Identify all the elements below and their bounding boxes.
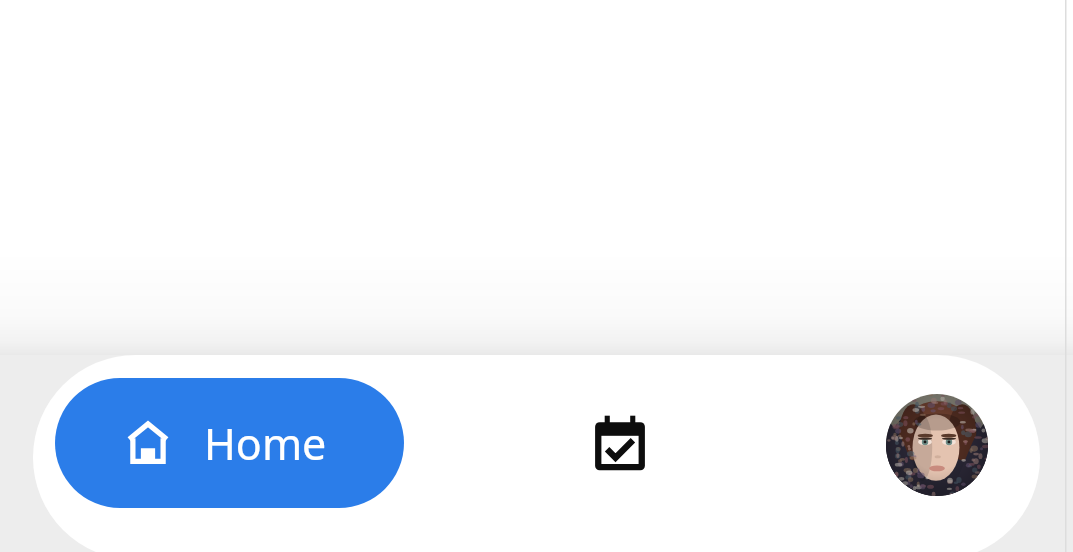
button[interactable]: Profile [880,388,994,502]
button[interactable]: Events [560,382,680,504]
button[interactable]: Home [55,378,404,508]
staticText: Home [204,414,327,473]
